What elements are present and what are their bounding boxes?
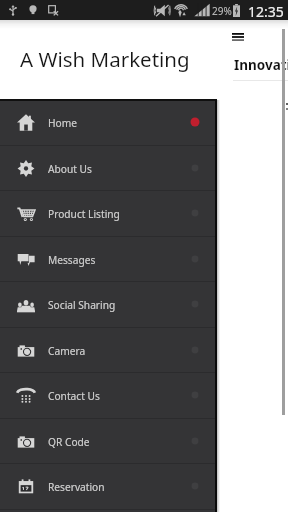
button[interactable]: Social Sharing <box>0 282 217 328</box>
button[interactable]: Camera <box>0 328 217 374</box>
staticText: Reservation <box>48 480 105 494</box>
button[interactable]: Open navigation menu <box>227 26 249 48</box>
staticText: Innovation <box>234 56 288 74</box>
button[interactable]: Reservation <box>0 464 217 510</box>
staticText: Contact Us <box>48 389 100 403</box>
button[interactable]: Messages <box>0 237 217 283</box>
button[interactable]: Contact Us <box>0 373 217 419</box>
staticText: QR Code <box>48 435 90 449</box>
staticText: 12:35 <box>248 2 284 21</box>
button[interactable]: Product Listing <box>0 191 217 237</box>
button[interactable]: Home <box>0 100 217 146</box>
staticText: 29% <box>212 4 232 18</box>
staticText: Messages <box>48 253 96 267</box>
staticText: Product Listing <box>48 207 120 221</box>
button[interactable]: QR Code <box>0 419 217 465</box>
button[interactable]: About Us <box>0 146 217 192</box>
staticText: A Wish Marketing <box>20 45 190 73</box>
staticText: Camera <box>48 344 86 358</box>
staticText: Home <box>48 116 77 130</box>
staticText: Social Sharing <box>48 298 116 312</box>
staticText: About Us <box>48 162 92 176</box>
